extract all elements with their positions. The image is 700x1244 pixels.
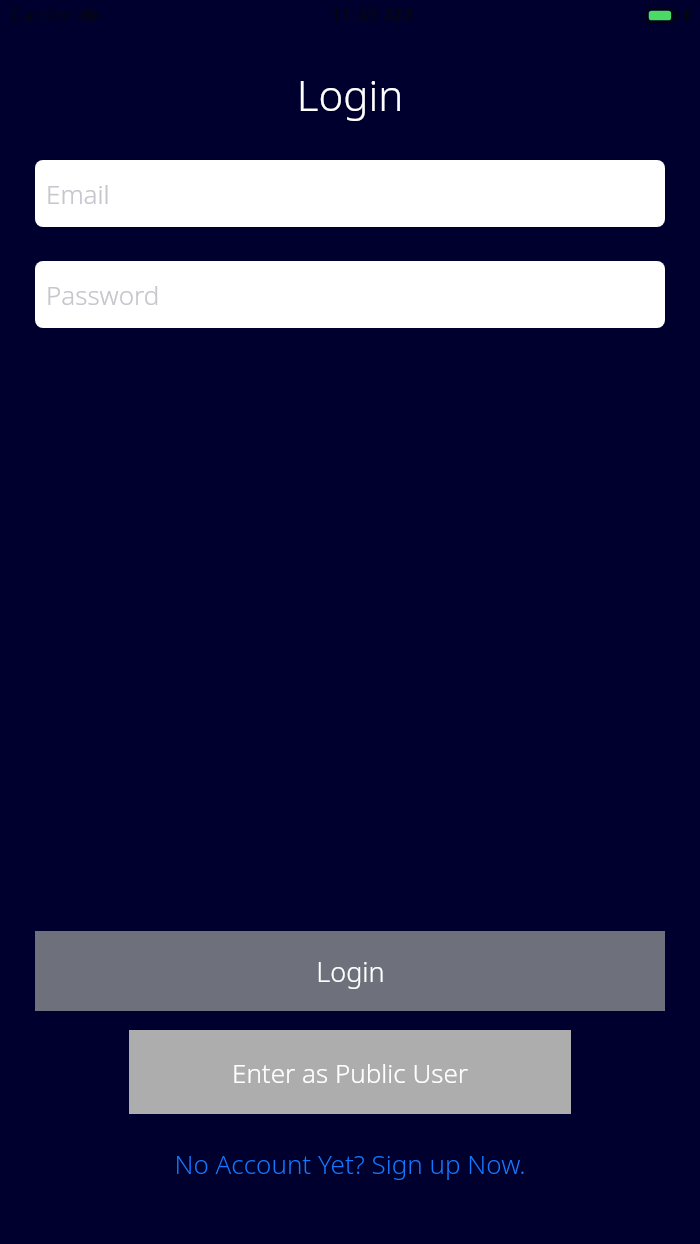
- staticText: 11:49 AM: [330, 2, 414, 28]
- button[interactable]: Password input field: [35, 261, 665, 328]
- staticText: Enter as Public User: [232, 1055, 468, 1090]
- staticText: Email: [46, 176, 110, 211]
- button[interactable]: No Account Yet? Sign up Now.: [0, 1140, 700, 1186]
- staticText: Carrier: [10, 2, 72, 28]
- staticText: Login: [0, 66, 700, 123]
- button[interactable]: Login: [35, 931, 665, 1011]
- staticText: Password: [46, 277, 160, 312]
- staticText: No Account Yet? Sign up Now.: [174, 1146, 526, 1181]
- button[interactable]: Enter as Public User: [129, 1030, 571, 1114]
- staticText: Login: [316, 953, 385, 990]
- button[interactable]: Email input field: [35, 160, 665, 227]
